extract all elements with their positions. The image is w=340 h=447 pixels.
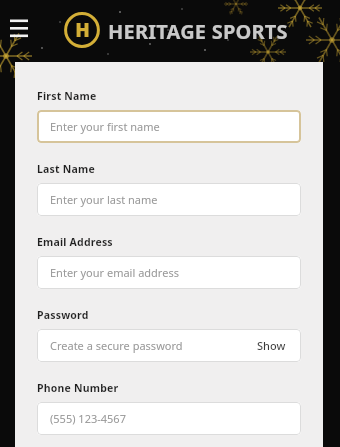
staticText: (555) 123-4567 (50, 411, 288, 426)
staticText: First Name (37, 89, 97, 103)
staticText: Password (37, 308, 89, 322)
staticText: Create a secure password (50, 338, 255, 353)
staticText: Phone Number (37, 381, 119, 395)
staticText: HERITAGE SPORTS (108, 18, 288, 44)
button[interactable]: Show (255, 334, 288, 357)
staticText: H (75, 17, 90, 43)
staticText: Last Name (37, 162, 95, 176)
staticText: Email Address (37, 235, 113, 249)
button[interactable]: Enter your last name (37, 183, 301, 216)
staticText: Enter your first name (50, 119, 288, 134)
button[interactable]: Create a secure password (37, 329, 301, 362)
button[interactable]: (555) 123-4567 (37, 402, 301, 435)
button[interactable]: Enter your first name (37, 110, 301, 143)
staticText: Enter your email address (50, 265, 288, 280)
button[interactable]: Enter your email address (37, 256, 301, 289)
staticText: Show (257, 338, 286, 353)
staticText: Enter your last name (50, 192, 288, 207)
button[interactable]: Menu (6, 15, 32, 41)
